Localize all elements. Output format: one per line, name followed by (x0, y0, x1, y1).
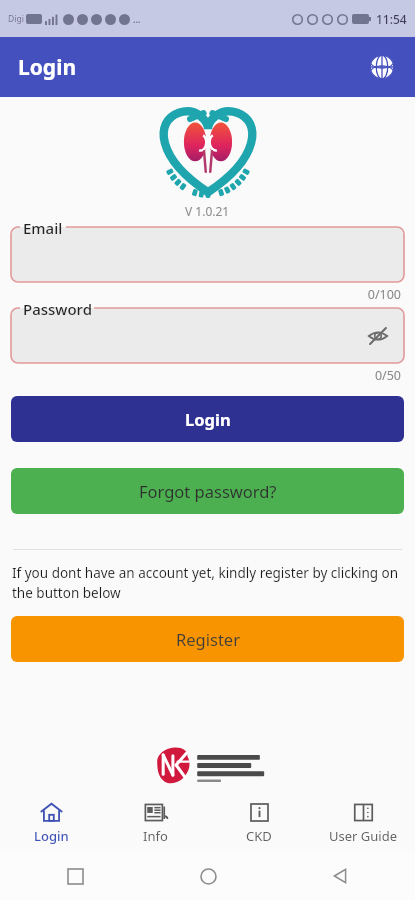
button[interactable]: Password (11, 308, 404, 363)
staticText: Info (143, 827, 168, 845)
staticText: Digi (8, 13, 24, 25)
staticText: Password (23, 299, 92, 319)
staticText: User Guide (329, 827, 397, 845)
staticText: Forgot password? (139, 480, 277, 502)
button[interactable]: Login (0, 795, 103, 851)
button[interactable]: Change language (361, 46, 403, 88)
button[interactable]: Login (11, 396, 404, 442)
button[interactable]: Register (11, 616, 404, 662)
button[interactable]: Recent apps (58, 859, 92, 893)
button[interactable]: Home (191, 859, 225, 893)
staticText: Register (176, 628, 240, 650)
staticText: 0/50 (0, 367, 401, 384)
button[interactable]: CKD (207, 795, 311, 851)
staticText: CKD (246, 827, 272, 845)
button[interactable]: User Guide (311, 795, 415, 851)
staticText: Login (34, 827, 69, 845)
button[interactable]: Email (11, 227, 404, 282)
staticText: 0/100 (0, 286, 401, 303)
staticText: Login (18, 53, 77, 82)
button[interactable]: Show password (360, 318, 396, 354)
button[interactable]: Back (323, 859, 357, 893)
staticText: If you dont have an account yet, kindly … (12, 564, 403, 602)
button[interactable]: Forgot password? (11, 468, 404, 514)
staticText: ... (133, 13, 141, 25)
staticText: 11:54 (376, 11, 407, 27)
staticText: Email (23, 218, 63, 238)
staticText: Login (185, 408, 231, 430)
staticText: V 1.0.21 (185, 203, 230, 219)
button[interactable]: Info (103, 795, 207, 851)
